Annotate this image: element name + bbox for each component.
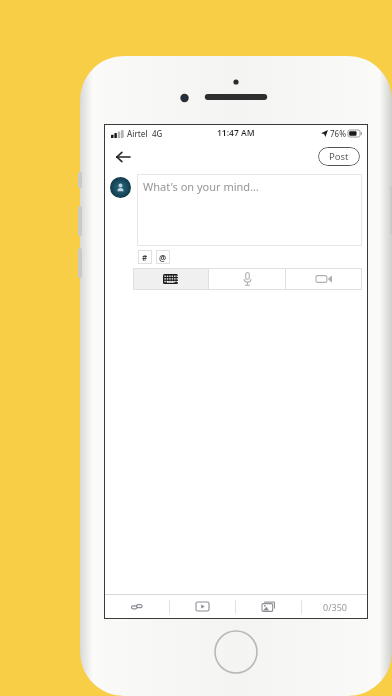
button[interactable]: Back [109, 143, 137, 171]
button[interactable]: Attach image [236, 595, 301, 618]
button[interactable]: # [138, 250, 152, 264]
button[interactable]: @ [156, 250, 170, 264]
staticText: 76% [330, 128, 346, 139]
staticText: Post [329, 150, 349, 163]
button[interactable]: Attach video [170, 595, 235, 618]
button[interactable]: Input mode [209, 268, 285, 290]
button[interactable]: Keyboard input [133, 268, 208, 290]
staticText: 0/350 [323, 601, 347, 613]
staticText: What's on your mind... [143, 179, 259, 194]
button[interactable]: What's on your mind... [137, 174, 362, 246]
staticText: @ [159, 252, 167, 263]
button[interactable]: Attach link [105, 595, 169, 618]
button[interactable]: Post [318, 147, 360, 166]
staticText: 11:47 AM [217, 127, 255, 139]
button[interactable]: Profile [110, 177, 131, 198]
staticText: # [142, 252, 148, 263]
button[interactable]: Input mode [286, 268, 362, 290]
staticText: 4G [152, 128, 163, 139]
staticText: Airtel [127, 128, 148, 139]
